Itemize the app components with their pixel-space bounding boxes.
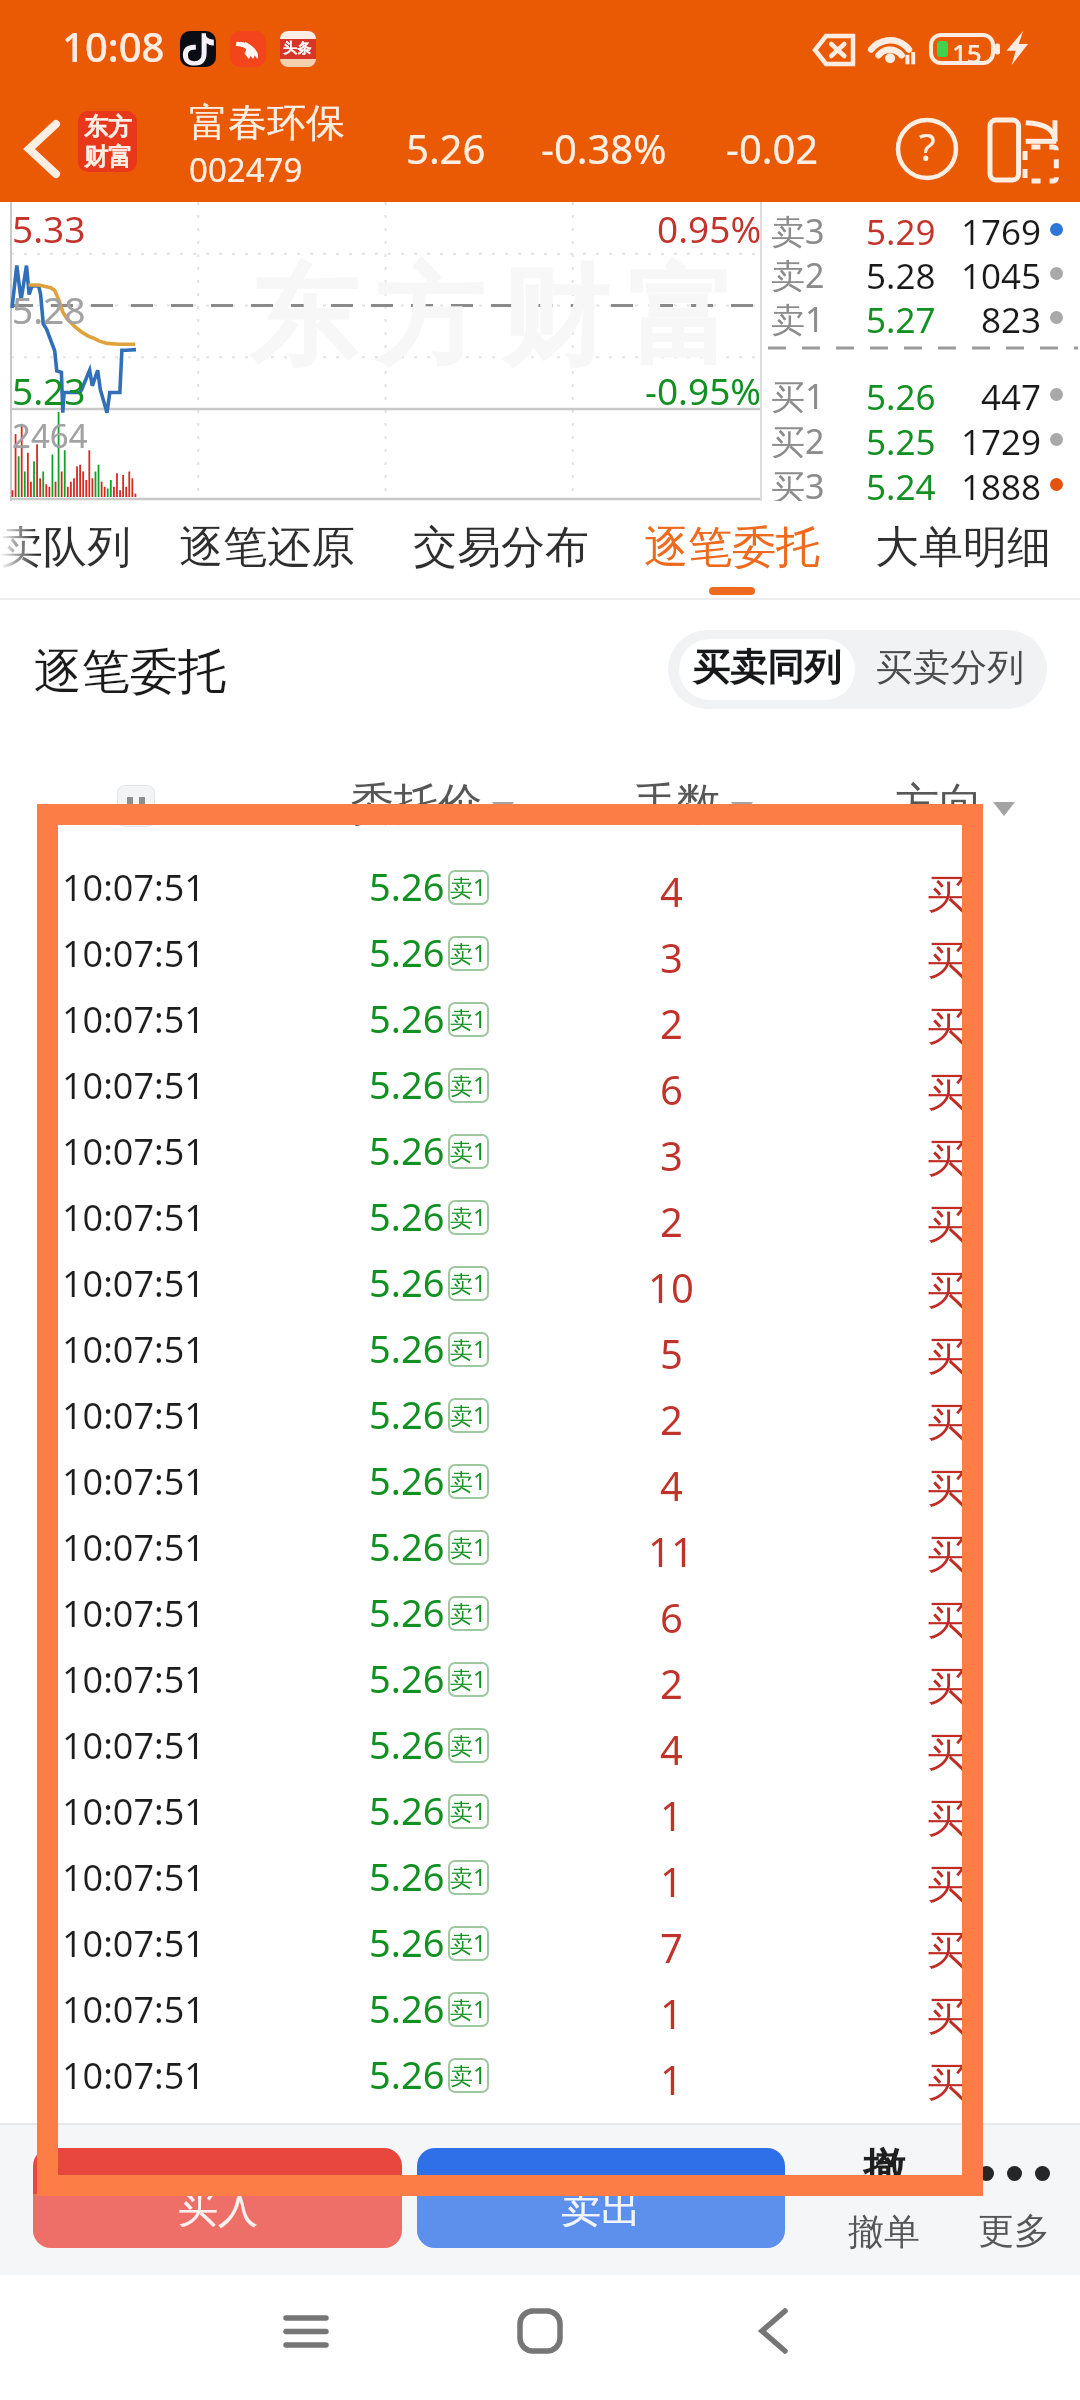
button[interactable]: Landscape mode [982,109,1064,191]
staticText: -0.02 [726,121,819,175]
button[interactable]: 手数 [633,774,753,832]
button[interactable]: 买3 [762,461,1080,506]
staticText: 买 [927,2057,967,2107]
staticText: 10:07:51 [62,995,205,1044]
staticText: 5.23 [12,365,86,415]
staticText: 5.29 [866,208,936,253]
button[interactable]: 10:07:51 [0,1112,1080,1178]
button[interactable]: 10:07:51 [0,1904,1080,1970]
staticText: 卖1 [450,1135,487,1166]
staticText: 卖1 [450,1861,487,1892]
staticText: 10:07:51 [62,1919,205,1968]
button[interactable]: 10:07:51 [0,1508,1080,1574]
staticText: 10:07:51 [62,1787,205,1836]
staticText: 方向 [895,777,983,832]
button[interactable]: 逐笔还原 [157,501,377,600]
button[interactable]: 卖2 [762,250,1080,295]
staticText: 1 [660,2052,683,2106]
button[interactable]: 方向 [895,774,1015,832]
staticText: 卖1 [771,296,825,341]
staticText: 5.26 [369,1784,445,1836]
button[interactable]: 买2 [762,416,1080,461]
button[interactable]: 10:07:51 [0,1706,1080,1772]
button[interactable]: 10:07:51 [0,848,1080,914]
staticText: 卖1 [450,1465,487,1496]
button[interactable]: 10:07:51 [0,2036,1080,2102]
button[interactable]: 10:07:51 [0,1310,1080,1376]
button[interactable]: 买卖同列 [679,639,855,700]
staticText: 买 [927,1529,967,1579]
staticText: -0.95% [645,365,762,415]
button[interactable]: 10:07:51 [0,1838,1080,1904]
button[interactable]: 卖3 [762,206,1080,251]
staticText: 11 [648,1524,694,1578]
staticText: 5.28 [866,252,936,297]
button[interactable]: 卖队列 [0,501,175,600]
button[interactable]: 10:07:51 [0,1244,1080,1310]
button[interactable]: Help [887,109,967,189]
staticText: 头条 [283,40,311,58]
staticText: 3 [660,930,683,984]
staticText: 卖1 [450,2059,487,2090]
button[interactable]: 大单明细 [853,501,1073,600]
staticText: 10:07:51 [62,1655,205,1704]
button[interactable]: 10:07:51 [0,914,1080,980]
staticText: 5.26 [369,1982,445,2034]
button[interactable]: 撤 [824,2143,944,2254]
staticText: 4 [660,864,683,918]
staticText: 卖1 [450,871,487,902]
staticText: 买 [927,935,967,985]
staticText: 5.26 [866,373,936,418]
staticText: 1729 [961,418,1042,463]
staticText: 5.26 [369,1322,445,1374]
button[interactable]: 10:07:51 [0,1574,1080,1640]
button[interactable]: 10:07:51 [0,1970,1080,2036]
button[interactable]: Pause [117,785,155,827]
staticText: 卖1 [450,1729,487,1760]
staticText: 卖1 [450,1003,487,1034]
button[interactable]: 委托价 [350,774,514,832]
staticText: 卖1 [450,1795,487,1826]
staticText: 10:07:51 [62,1127,205,1176]
staticText: 买 [927,1595,967,1645]
button[interactable]: Back [2,96,80,202]
staticText: 手数 [633,777,721,832]
button[interactable]: Back [732,2291,812,2371]
button[interactable]: 10:07:51 [0,1772,1080,1838]
staticText: 逐笔委托 [34,642,226,702]
staticText: 买 [927,1001,967,1051]
button[interactable]: 卖1 [762,294,1080,339]
staticText: 5.27 [866,296,936,341]
button[interactable]: 10:07:51 [0,1178,1080,1244]
staticText: -0.38% [541,121,667,175]
staticText: 10:08 [62,19,165,73]
button[interactable]: 卖出 [417,2148,785,2248]
button[interactable]: 交易分布 [391,501,611,600]
staticText: 买 [927,1463,967,1513]
staticText: 10:07:51 [62,1457,205,1506]
button[interactable]: More [954,2143,1074,2253]
staticText: 买 [927,1067,967,1117]
button[interactable]: 10:07:51 [0,980,1080,1046]
staticText: 10:07:51 [62,1523,205,1572]
button[interactable]: 买入 [33,2148,402,2248]
staticText: 买 [927,1925,967,1975]
staticText: 逐笔还原 [179,520,355,575]
button[interactable]: 10:07:51 [0,1376,1080,1442]
button[interactable]: 逐笔委托 [622,501,842,600]
staticText: 3 [660,1128,683,1182]
button[interactable]: Home [500,2291,580,2371]
button[interactable]: 买1 [762,371,1080,416]
button[interactable]: 买卖分列 [860,639,1040,700]
staticText: 7 [660,1920,683,1974]
staticText: 卖1 [450,1663,487,1694]
button[interactable]: Recents [266,2291,346,2371]
staticText: 卖3 [771,208,825,253]
staticText: 买 [927,1727,967,1777]
staticText: 1 [660,1788,683,1842]
button[interactable]: 10:07:51 [0,1442,1080,1508]
staticText: 买 [927,1397,967,1447]
staticText: 1045 [961,252,1042,297]
button[interactable]: 10:07:51 [0,1046,1080,1112]
button[interactable]: 10:07:51 [0,1640,1080,1706]
